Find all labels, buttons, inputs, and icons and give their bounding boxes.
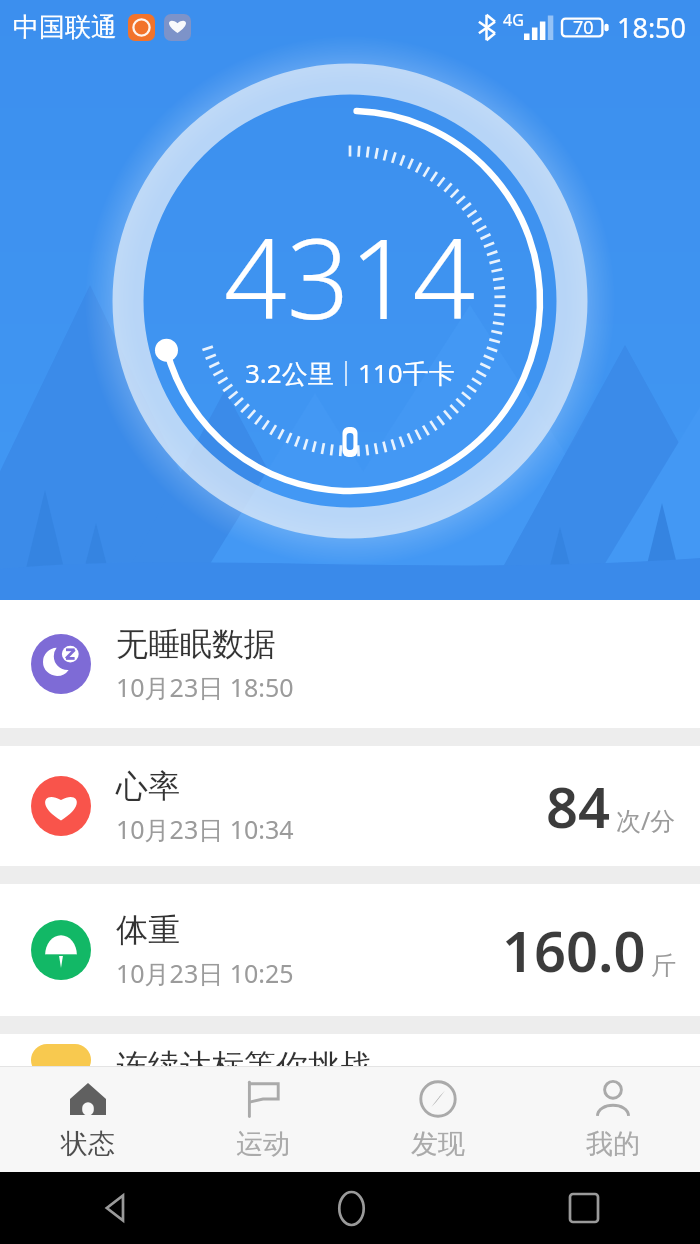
button[interactable]: 无睡眠数据: [0, 600, 700, 728]
staticText: 110千卡: [358, 355, 455, 391]
button[interactable]: Home: [323, 1180, 379, 1236]
staticText: 3.2公里: [245, 355, 334, 391]
staticText: 70: [573, 15, 594, 40]
staticText: 心率: [116, 766, 180, 806]
button[interactable]: 运动: [175, 1067, 350, 1172]
staticText: 斤: [651, 950, 676, 981]
staticText: 4314: [224, 201, 476, 351]
staticText: 4G: [503, 9, 524, 31]
staticText: 发现: [411, 1127, 465, 1161]
staticText: 160.0: [502, 912, 646, 988]
button[interactable]: 体重: [0, 884, 700, 1016]
button[interactable]: 发现: [350, 1067, 525, 1172]
staticText: 状态: [61, 1127, 115, 1161]
staticText: 次/分: [616, 803, 676, 837]
staticText: 连续达标等你挑战: [116, 1046, 372, 1078]
staticText: 无睡眠数据: [116, 624, 276, 664]
staticText: 体重: [116, 910, 180, 950]
staticText: 10月23日 10:34: [116, 812, 294, 846]
button[interactable]: Recents: [556, 1180, 612, 1236]
staticText: 84: [546, 768, 611, 844]
staticText: 10月23日 10:25: [116, 956, 294, 990]
staticText: 我的: [586, 1127, 640, 1161]
staticText: 运动: [236, 1127, 290, 1161]
staticText: 中国联通: [13, 11, 117, 44]
button[interactable]: 我的: [525, 1067, 700, 1172]
button[interactable]: 状态: [0, 1067, 175, 1172]
staticText: 10月23日 18:50: [116, 670, 294, 704]
button[interactable]: 连续达标等你挑战: [0, 1034, 700, 1066]
button[interactable]: Back: [89, 1180, 145, 1236]
staticText: 18:50: [617, 9, 687, 46]
button[interactable]: 心率: [0, 746, 700, 866]
